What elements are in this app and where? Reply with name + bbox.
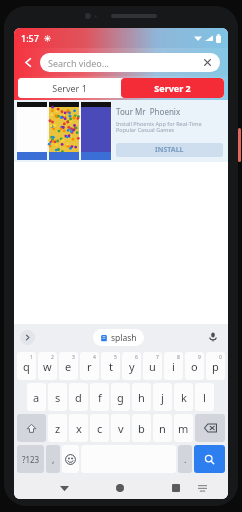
staticText: INSTALL (155, 145, 184, 155)
button[interactable]: q (17, 352, 36, 380)
staticText: 7 (156, 354, 159, 361)
button[interactable]: u (143, 352, 162, 380)
staticText: Install Phoenix App for Real-Time Popula… (116, 120, 202, 134)
button[interactable]: t (101, 352, 120, 380)
staticText: n (159, 421, 166, 436)
button[interactable]: o (185, 352, 204, 380)
button[interactable]: b (132, 414, 151, 442)
staticText: u (149, 359, 156, 374)
button[interactable]: s (48, 383, 67, 411)
button[interactable]: r (80, 352, 99, 380)
staticText: g (117, 390, 124, 405)
staticText: x (76, 421, 82, 436)
button[interactable]: splash (93, 329, 144, 346)
staticText: Search video... (48, 57, 110, 69)
staticText: ?123 (22, 454, 40, 465)
button[interactable]: Server 2 (121, 78, 224, 98)
staticText: 6 (135, 354, 138, 361)
staticText: , (52, 453, 55, 465)
button[interactable]: z (48, 414, 67, 442)
button[interactable]: Voice input (203, 327, 223, 347)
button[interactable]: . (178, 445, 192, 473)
button[interactable]: n (153, 414, 172, 442)
button[interactable]: Tour Mr Phoenix (14, 100, 228, 162)
staticText: 9 (198, 354, 201, 361)
staticText: a (33, 390, 40, 405)
staticText: i (172, 359, 175, 374)
button[interactable]: Home (109, 477, 131, 499)
button[interactable]: m (174, 414, 193, 442)
button[interactable]: Emoji (62, 445, 79, 473)
button[interactable]: Backspace (195, 414, 225, 442)
staticText: 0 (219, 354, 222, 361)
button[interactable]: l (195, 383, 214, 411)
staticText: Server 1 (52, 82, 87, 94)
button[interactable]: Expand suggestions (20, 330, 35, 345)
staticText: m (178, 421, 189, 436)
staticText: e (65, 359, 72, 374)
staticText: 1:57 (21, 32, 39, 44)
button[interactable]: k (174, 383, 193, 411)
button[interactable]: i (164, 352, 183, 380)
staticText: l (203, 390, 206, 405)
button[interactable]: h (132, 383, 151, 411)
staticText: z (55, 421, 61, 436)
staticText: s (55, 390, 61, 405)
staticText: h (138, 390, 145, 405)
button[interactable]: Search (194, 445, 225, 473)
staticText: 3 (72, 354, 75, 361)
staticText: f (98, 390, 102, 405)
button[interactable]: Clear (203, 58, 212, 67)
staticText: c (97, 421, 103, 436)
staticText: v (118, 421, 124, 436)
button[interactable]: p (206, 352, 225, 380)
button[interactable]: a (27, 383, 46, 411)
button[interactable]: c (90, 414, 109, 442)
button[interactable]: Server 1 (18, 78, 121, 98)
button[interactable]: g (111, 383, 130, 411)
staticText: Tour Mr Phoenix (116, 106, 181, 117)
button[interactable]: INSTALL (116, 143, 223, 157)
button[interactable]: Back (18, 52, 38, 72)
staticText: t (109, 359, 113, 374)
staticText: . (184, 453, 187, 465)
staticText: b (138, 421, 145, 436)
button[interactable]: Back (53, 477, 75, 499)
staticText: 8 (177, 354, 180, 361)
staticText: o (191, 359, 198, 374)
staticText: Server 2 (154, 82, 191, 94)
button[interactable]: ?123 (17, 445, 44, 473)
staticText: 1 (30, 354, 33, 361)
staticText: k (181, 390, 187, 405)
button[interactable]: f (90, 383, 109, 411)
button[interactable]: Recent apps (165, 477, 187, 499)
staticText: q (23, 359, 30, 374)
button[interactable]: Hide keyboard (193, 479, 211, 497)
staticText: 4 (93, 354, 96, 361)
staticText: r (87, 359, 92, 374)
button[interactable]: j (153, 383, 172, 411)
button[interactable]: d (69, 383, 88, 411)
staticText: splash (111, 332, 137, 344)
staticText: y (129, 359, 135, 374)
button[interactable]: Shift (17, 414, 46, 442)
button[interactable]: , (46, 445, 60, 473)
button[interactable]: x (69, 414, 88, 442)
staticText: j (161, 390, 164, 405)
staticText: 2 (51, 354, 54, 361)
staticText: 5 (114, 354, 117, 361)
staticText: p (212, 359, 219, 374)
button[interactable]: Search video... (40, 53, 220, 72)
button[interactable]: e (59, 352, 78, 380)
staticText: w (43, 359, 52, 374)
button[interactable]: w (38, 352, 57, 380)
button[interactable]: v (111, 414, 130, 442)
staticText: d (75, 390, 82, 405)
button[interactable]: y (122, 352, 141, 380)
